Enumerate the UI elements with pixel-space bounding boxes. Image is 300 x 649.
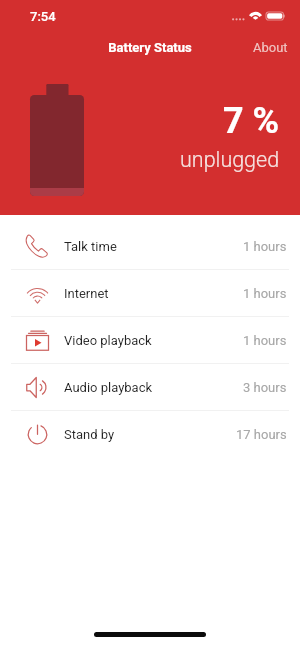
staticText: 7:54	[30, 9, 56, 24]
button[interactable]: Video playback	[0, 317, 300, 364]
button[interactable]: Stand by	[0, 411, 300, 457]
other: Talk time	[25, 234, 50, 259]
staticText: unplugged	[180, 147, 280, 172]
staticText: Internet	[64, 286, 109, 301]
staticText: 1 hours	[243, 333, 287, 348]
other: Audio playback	[25, 375, 50, 400]
staticText: 1 hours	[243, 239, 287, 254]
staticText: 17 hours	[236, 427, 287, 442]
staticText: About	[253, 40, 288, 55]
staticText: 3 hours	[243, 380, 287, 395]
button[interactable]: About	[243, 31, 298, 64]
staticText: Talk time	[64, 239, 117, 254]
staticText: Battery Status	[0, 40, 300, 55]
staticText: Video playback	[64, 333, 152, 348]
button[interactable]: Talk time	[0, 223, 300, 270]
button[interactable]: Internet	[0, 270, 300, 317]
other: Video playback	[25, 328, 50, 353]
staticText: Audio playback	[64, 380, 153, 395]
other: Stand by	[25, 422, 50, 447]
staticText: 7 %	[223, 100, 280, 142]
other: Internet	[25, 281, 50, 306]
button[interactable]: Audio playback	[0, 364, 300, 411]
staticText: Stand by	[64, 427, 115, 442]
staticText: 1 hours	[243, 286, 287, 301]
